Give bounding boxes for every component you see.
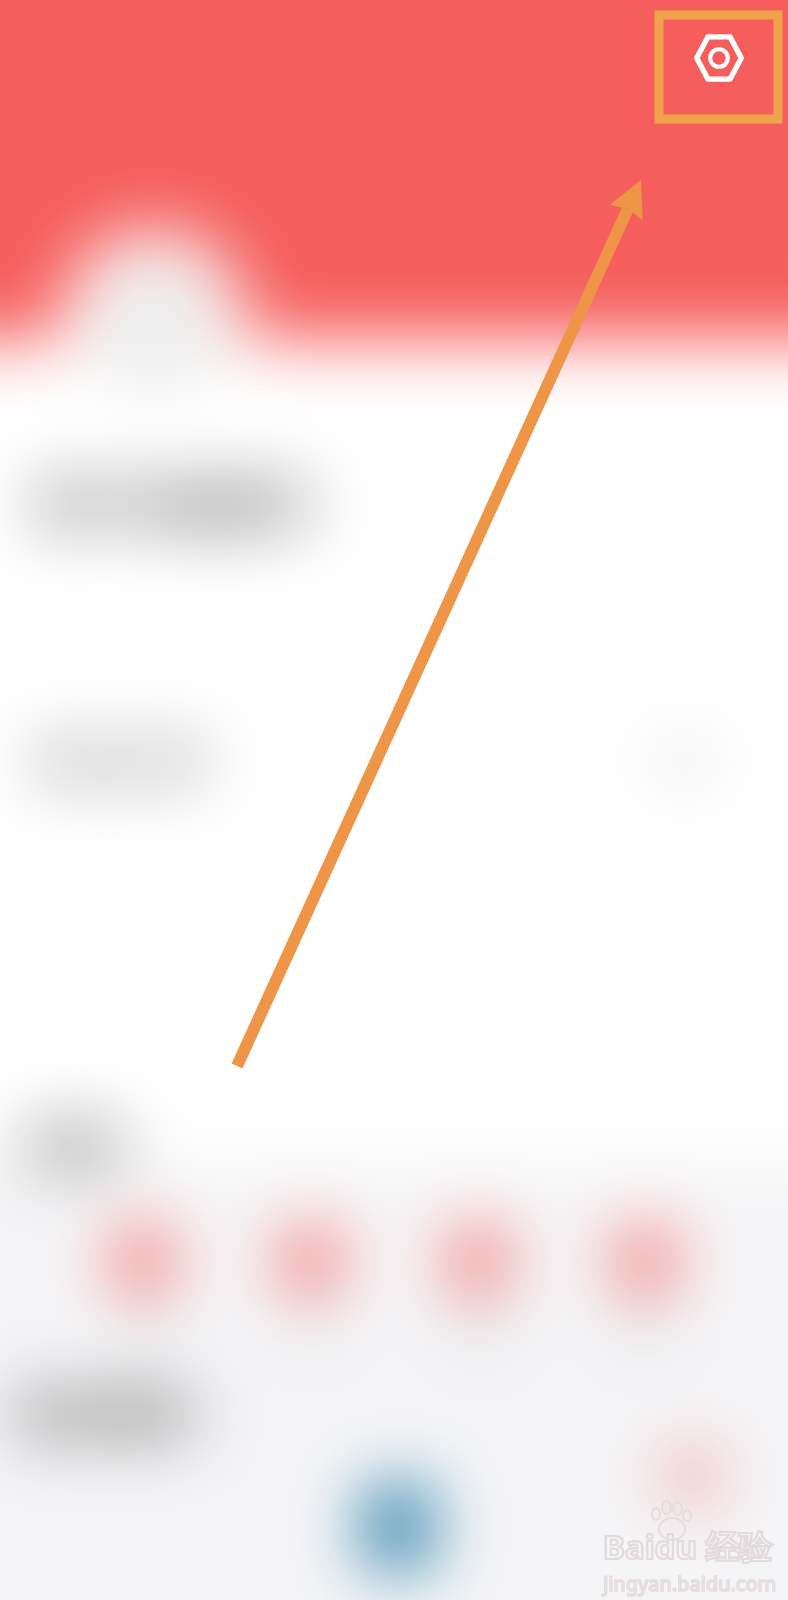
staticText: Baidu 经验	[603, 1524, 772, 1569]
staticText: 用户名称显示	[36, 478, 312, 536]
staticText: 我的设置	[32, 735, 208, 790]
button[interactable]: 我的设置	[0, 700, 788, 824]
staticText: jingyan.baidu.com	[603, 1570, 777, 1597]
button[interactable]: 帮助	[614, 1232, 676, 1343]
staticText: 更多服务	[14, 1387, 198, 1445]
button[interactable]	[363, 1484, 433, 1570]
button[interactable]: 充值	[112, 1232, 174, 1343]
staticText: 常用	[26, 1120, 118, 1178]
button[interactable]: Settings	[686, 25, 751, 90]
staticText: 收藏	[452, 1310, 504, 1343]
staticText: 帮助	[619, 1310, 671, 1343]
button[interactable]: 订单	[279, 1232, 341, 1343]
staticText: 订单	[284, 1310, 336, 1343]
staticText: 充值	[117, 1310, 169, 1343]
button[interactable]	[84, 252, 224, 392]
button[interactable]: 收藏	[447, 1232, 509, 1343]
